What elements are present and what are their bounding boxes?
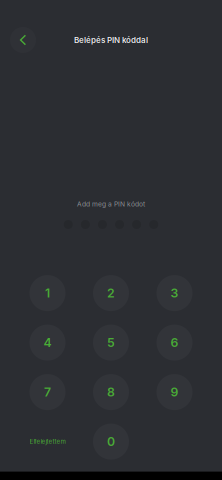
staticText: 8 (107, 385, 115, 399)
button[interactable]: 6 (156, 325, 192, 361)
staticText: 4 (43, 335, 51, 350)
button[interactable]: 3 (156, 275, 192, 311)
staticText: 5 (107, 335, 115, 350)
staticText: 2 (107, 286, 115, 300)
button[interactable]: 2 (93, 275, 129, 311)
staticText: 1 (45, 286, 50, 300)
staticText: 7 (44, 385, 51, 399)
staticText: 0 (107, 434, 115, 449)
staticText: 6 (170, 335, 178, 350)
button[interactable]: Back (10, 27, 36, 53)
staticText: 9 (170, 385, 178, 399)
button[interactable]: 4 (29, 325, 65, 361)
button[interactable]: 7 (29, 374, 65, 410)
button[interactable]: 0 (93, 424, 129, 460)
button[interactable]: Elfelejtettem (29, 424, 65, 460)
staticText: 3 (170, 286, 178, 300)
staticText: Elfelejtettem (29, 438, 65, 445)
button[interactable]: 9 (156, 374, 192, 410)
staticText: Add meg a PIN kódot (77, 200, 145, 208)
button[interactable]: 5 (93, 325, 129, 361)
staticText: Belépés PIN kóddal (74, 35, 148, 45)
button[interactable]: 8 (93, 374, 129, 410)
button[interactable]: 1 (29, 275, 65, 311)
